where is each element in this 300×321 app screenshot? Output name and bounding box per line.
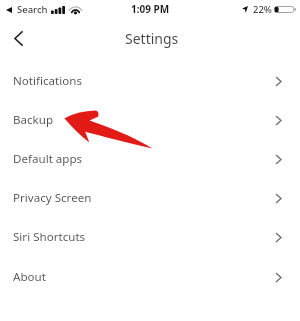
staticText: Notifications [13,73,82,89]
button[interactable]: Default apps [0,141,300,179]
staticText: Search [17,3,48,16]
button[interactable]: Back [4,24,32,52]
staticText: Backup [13,112,54,128]
button[interactable]: Siri Shortcuts [0,219,300,257]
staticText: Default apps [13,151,83,167]
button[interactable]: About [0,259,300,297]
button[interactable]: Notifications [0,63,300,101]
button[interactable]: Backup [0,102,300,140]
staticText: About [13,269,46,285]
button[interactable]: Privacy Screen [0,180,300,218]
staticText: 1:09 PM [131,2,170,16]
staticText: Settings [125,29,179,48]
staticText: 22% [253,3,272,16]
staticText: Siri Shortcuts [13,229,86,245]
staticText: Privacy Screen [13,190,92,206]
